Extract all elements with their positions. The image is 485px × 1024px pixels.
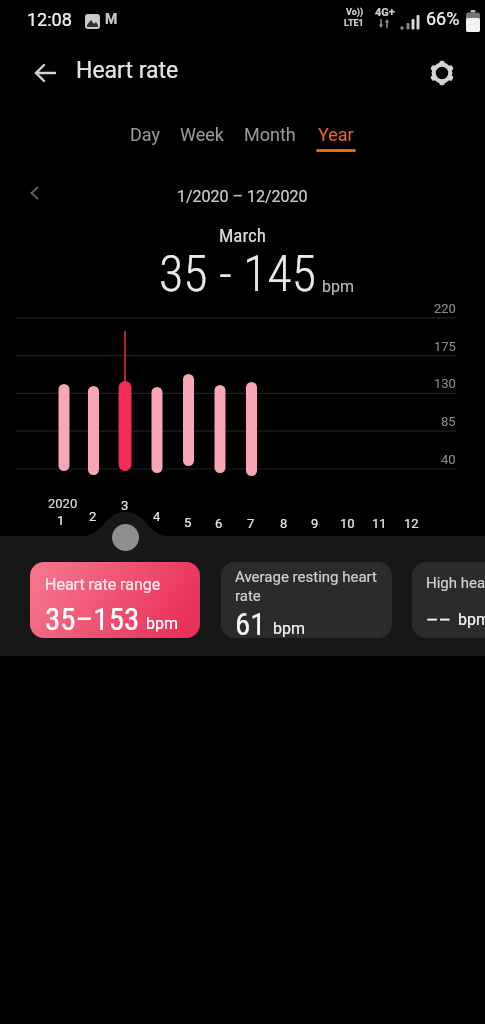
button[interactable] [28, 56, 62, 90]
staticText: 220 [434, 301, 456, 316]
button[interactable]: Week [180, 124, 224, 149]
staticText: Vo)) [346, 7, 364, 18]
staticText: Week [180, 124, 224, 145]
staticText: M [105, 11, 118, 27]
staticText: 10 [340, 516, 355, 531]
staticText: LTE1 [344, 18, 364, 29]
staticText: 9 [311, 516, 319, 531]
staticText: 4G+ [375, 6, 395, 19]
staticText: 175 [434, 339, 456, 354]
staticText: 85 [441, 414, 456, 429]
button[interactable] [424, 55, 460, 91]
staticText: bpm [273, 619, 305, 638]
button[interactable]: Heart rate range [30, 562, 200, 638]
staticText: bpm [146, 614, 178, 633]
staticText: 61 [235, 606, 266, 635]
button[interactable]: Day [130, 124, 160, 149]
staticText: 12 [404, 516, 419, 531]
staticText: Year [318, 124, 354, 145]
staticText: bpm [322, 277, 354, 296]
staticText: Heart rate [76, 57, 179, 84]
staticText: –– [426, 608, 451, 630]
staticText: 8 [280, 516, 288, 531]
staticText: 7 [247, 516, 255, 531]
staticText: Day [130, 124, 160, 145]
button[interactable]: Year [316, 124, 356, 152]
staticText: 1/2020 – 12/2020 [177, 187, 308, 206]
button[interactable] [111, 523, 140, 552]
button[interactable] [22, 181, 48, 205]
staticText: 66% [426, 8, 460, 29]
staticText: 4 [153, 509, 161, 524]
button[interactable]: High heart rate [412, 562, 485, 638]
button[interactable]: Average resting heart rate [221, 562, 392, 638]
staticText: Month [244, 124, 296, 145]
staticText: 1 [57, 513, 65, 528]
staticText: 35–153 [45, 601, 140, 637]
staticText: 40 [441, 452, 456, 467]
staticText: 130 [434, 376, 456, 391]
staticText: Heart rate range [45, 575, 161, 594]
staticText: 2020 [48, 496, 78, 511]
staticText: 2 [89, 509, 97, 524]
staticText: Average resting heart rate [235, 568, 377, 604]
staticText: 5 [184, 515, 192, 530]
staticText: High heart rate [426, 574, 485, 592]
staticText: 12:08 [27, 9, 72, 30]
staticText: March [219, 224, 267, 246]
button[interactable]: Month [244, 124, 296, 149]
staticText: 11 [372, 516, 387, 531]
staticText: bpm [458, 610, 485, 629]
staticText: 3 [121, 498, 129, 513]
staticText: 35 - 145 [159, 245, 317, 304]
staticText: 6 [215, 516, 223, 531]
